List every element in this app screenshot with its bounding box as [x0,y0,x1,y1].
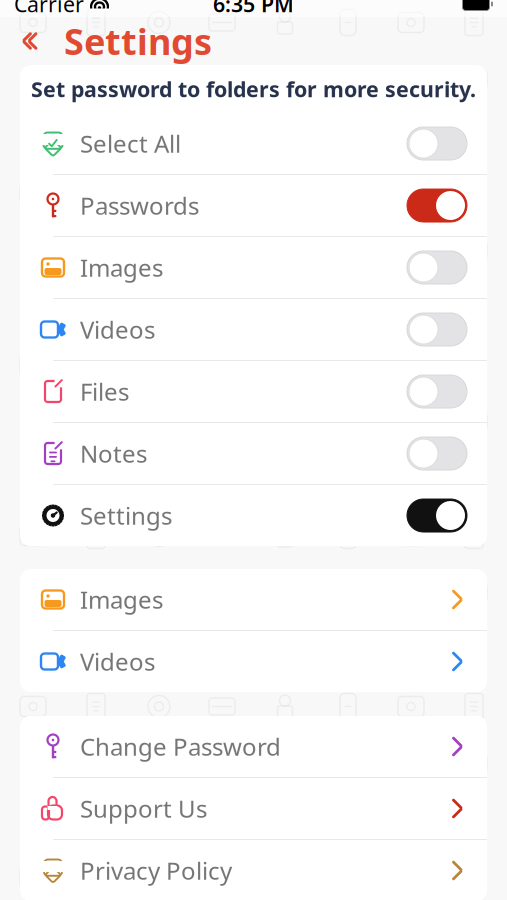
staticText: Change Password [80,731,281,762]
button[interactable]: Notes [20,423,487,484]
button[interactable]: Images [20,237,487,298]
button[interactable]: Privacy Policy [20,840,487,900]
staticText: Notes [80,438,147,469]
staticText: Settings [64,17,212,65]
button[interactable]: Files [20,361,487,422]
button[interactable]: Back [8,19,52,63]
staticText: Passwords [80,190,199,221]
staticText: Support Us [80,793,207,824]
staticText: Select All [80,128,181,159]
staticText: Settings [80,500,172,531]
button[interactable]: Passwords [20,175,487,236]
staticText: Carrier [14,0,84,18]
button[interactable]: Videos [20,299,487,360]
button[interactable]: Change Password [20,716,487,777]
staticText: Files [80,376,129,407]
staticText: Privacy Policy [80,855,232,886]
staticText: Images [80,252,163,283]
staticText: Set password to folders for more securit… [31,75,476,103]
staticText: Images [80,584,163,615]
button[interactable]: Videos [20,631,487,692]
button[interactable]: Settings [20,485,487,546]
staticText: 6:35 PM [213,0,294,18]
button[interactable]: Support Us [20,778,487,839]
button[interactable]: Images [20,569,487,630]
staticText: Videos [80,314,155,345]
button[interactable]: Select All [20,113,487,174]
staticText: Videos [80,646,155,677]
